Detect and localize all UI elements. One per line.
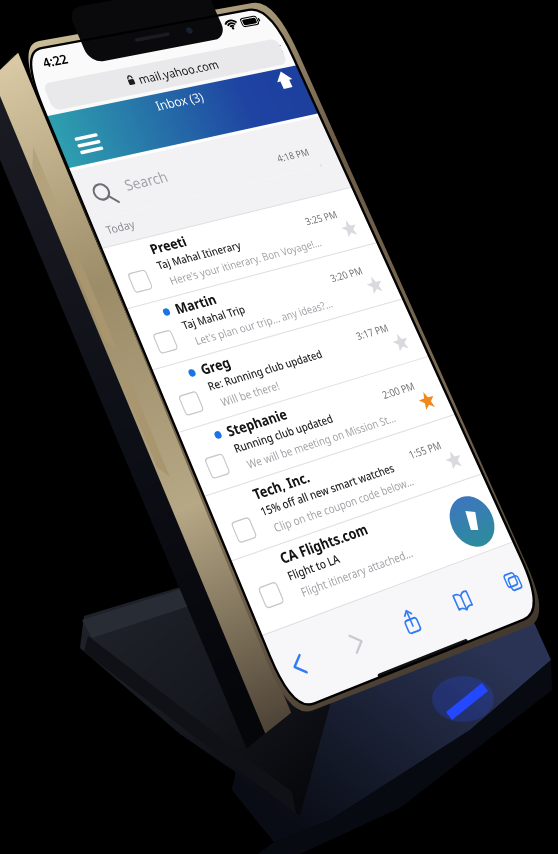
button[interactable]: Yahoo Mail inbox on phone in dock [0,0,558,854]
